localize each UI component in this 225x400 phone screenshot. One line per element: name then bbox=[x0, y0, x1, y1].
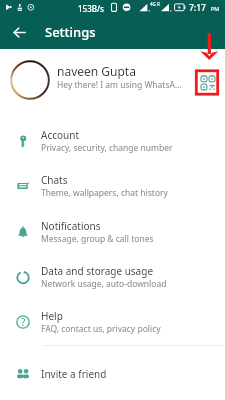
staticText: Invite a friend bbox=[41, 367, 107, 381]
staticText: PM bbox=[211, 5, 220, 12]
staticText: Privacy, security, change number bbox=[41, 142, 173, 154]
staticText: R bbox=[157, 1, 160, 7]
button[interactable]: Back bbox=[0, 15, 38, 49]
staticText: 4G bbox=[150, 1, 156, 7]
staticText: Notifications bbox=[41, 219, 101, 233]
staticText: Data and storage usage bbox=[41, 264, 154, 278]
staticText: naveen Gupta bbox=[57, 63, 136, 79]
button[interactable]: Data and storage usage bbox=[0, 256, 225, 301]
button[interactable]: Chats bbox=[0, 165, 225, 210]
staticText: Hey there! I am using WhatsA... bbox=[57, 79, 182, 91]
staticText: Message, group & call tones bbox=[41, 233, 154, 245]
button[interactable]: Invite a friend bbox=[0, 351, 225, 396]
button[interactable]: naveen Gupta bbox=[0, 49, 225, 111]
staticText: 153B/s bbox=[78, 3, 104, 14]
button[interactable]: QR code bbox=[190, 60, 222, 100]
staticText: ? bbox=[21, 315, 26, 329]
staticText: 7:17 bbox=[189, 2, 206, 14]
staticText: Help bbox=[41, 309, 63, 323]
staticText: Theme, wallpapers, chat history bbox=[41, 187, 168, 199]
button[interactable]: Account bbox=[0, 120, 225, 165]
button[interactable]: Notifications bbox=[0, 211, 225, 256]
staticText: Settings bbox=[45, 23, 96, 41]
staticText: Account bbox=[41, 128, 80, 142]
staticText: Network usage, auto-download bbox=[41, 278, 167, 290]
staticText: Chats bbox=[41, 173, 68, 187]
button[interactable]: ? bbox=[0, 301, 225, 346]
staticText: FAQ, contact us, privacy policy bbox=[41, 323, 161, 335]
